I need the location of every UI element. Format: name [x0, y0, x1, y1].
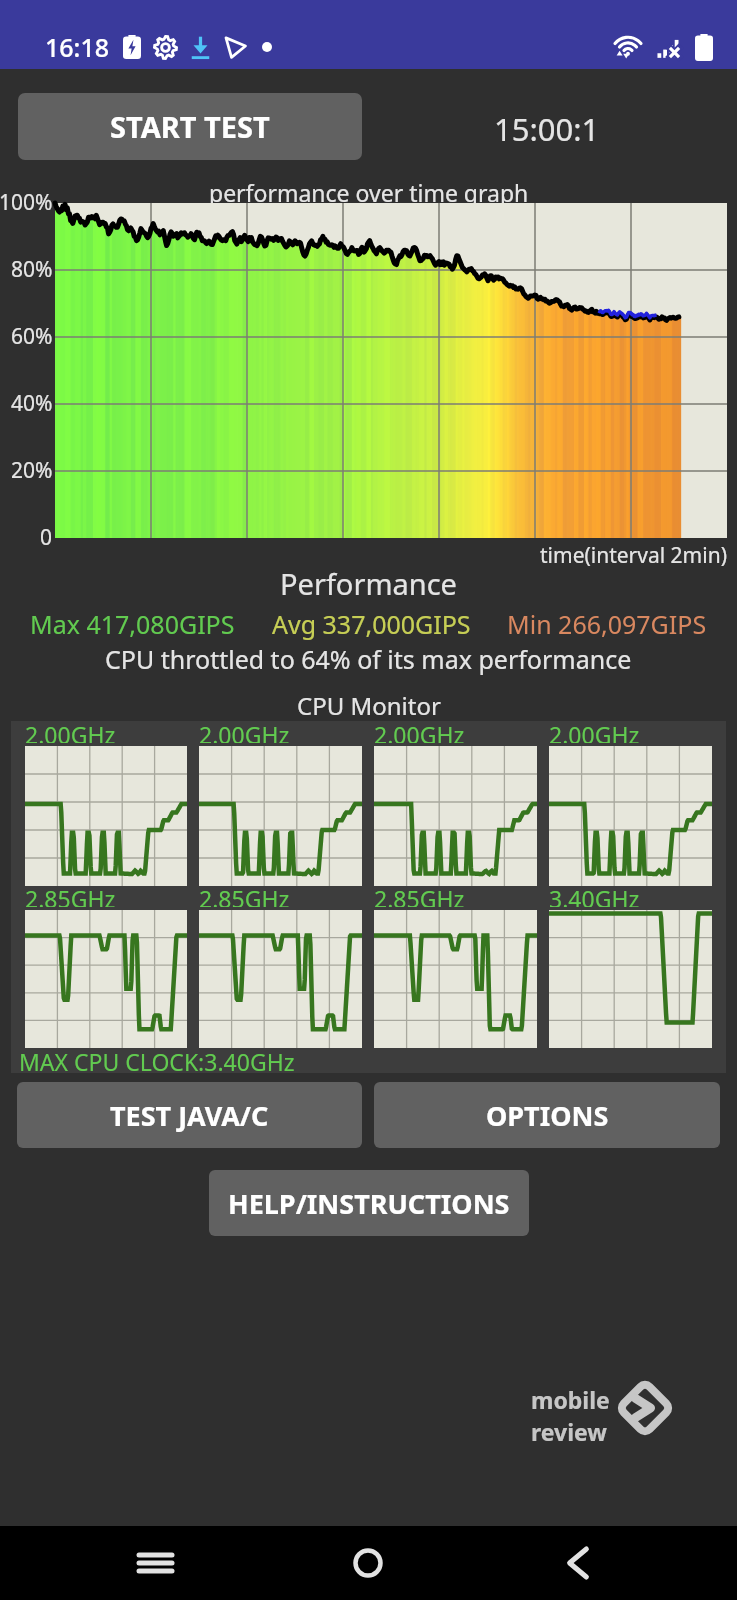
staticText: START TEST — [110, 107, 270, 146]
button[interactable]: Home — [333, 1526, 403, 1600]
staticText: HELP/INSTRUCTIONS — [228, 1185, 510, 1222]
button[interactable]: Recents — [120, 1526, 190, 1600]
staticText: 20% — [11, 456, 53, 485]
staticText: 16:18 — [45, 30, 110, 64]
staticText: Avg 337,000GIPS — [272, 607, 471, 641]
button[interactable]: HELP/INSTRUCTIONS — [209, 1170, 529, 1236]
staticText: CPU throttled to 64% of its max performa… — [105, 642, 632, 676]
staticText: 40% — [11, 389, 53, 418]
staticText: Max 417,080GIPS — [30, 607, 235, 641]
staticText: 2.85GHz — [374, 883, 465, 907]
staticText: review — [531, 1416, 608, 1447]
staticText: 2.00GHz — [25, 719, 116, 743]
staticText: Performance — [280, 564, 457, 603]
staticText: 60% — [11, 322, 53, 351]
staticText: 2.00GHz — [374, 719, 465, 743]
staticText: 15:00:1 — [494, 108, 600, 150]
staticText: mobile — [531, 1384, 610, 1415]
staticText: 100% — [0, 188, 53, 217]
staticText: CPU Monitor — [297, 689, 441, 722]
button[interactable]: START TEST — [18, 93, 362, 160]
staticText: 80% — [11, 255, 53, 284]
button[interactable]: Back — [543, 1526, 613, 1600]
staticText: 2.00GHz — [199, 719, 290, 743]
staticText: TEST JAVA/C — [110, 1097, 269, 1134]
staticText: performance over time graph — [209, 177, 529, 208]
button[interactable]: TEST JAVA/C — [17, 1082, 362, 1148]
staticText: 3.40GHz — [549, 883, 640, 907]
button[interactable]: OPTIONS — [374, 1082, 720, 1148]
staticText: 2.85GHz — [25, 883, 116, 907]
staticText: 2.00GHz — [549, 719, 640, 743]
staticText: MAX CPU CLOCK:3.40GHz — [19, 1046, 295, 1071]
staticText: 0 — [40, 523, 53, 552]
staticText: time(interval 2min) — [540, 541, 727, 570]
staticText: Min 266,097GIPS — [507, 607, 707, 641]
staticText: 2.85GHz — [199, 883, 290, 907]
staticText: OPTIONS — [486, 1097, 609, 1134]
